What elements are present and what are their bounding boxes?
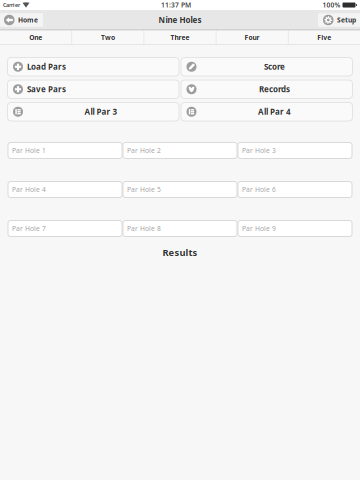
staticText: All Par 3 xyxy=(84,106,117,117)
button[interactable]: All Par 4 xyxy=(181,102,352,121)
staticText: 11:37 PM xyxy=(161,1,191,9)
button[interactable]: Score xyxy=(181,57,352,76)
button[interactable]: Load Pars xyxy=(7,57,179,76)
staticText: Par Hole 9 xyxy=(242,224,276,233)
staticText: Four xyxy=(245,33,260,42)
staticText: Save Pars xyxy=(27,84,66,94)
staticText: Three xyxy=(170,33,189,42)
staticText: Records xyxy=(259,84,290,94)
staticText: Home xyxy=(18,16,38,24)
staticText: Five xyxy=(317,33,331,42)
staticText: Nine Holes xyxy=(158,15,201,25)
button[interactable]: Records xyxy=(181,80,352,98)
staticText: One xyxy=(29,33,42,42)
button[interactable]: Par Hole 6 xyxy=(238,181,352,197)
staticText: Carrier xyxy=(3,1,20,9)
button[interactable]: Par Hole 8 xyxy=(123,220,237,236)
button[interactable]: One xyxy=(0,30,71,45)
staticText: All Par 4 xyxy=(258,106,291,117)
staticText: Score xyxy=(264,61,285,72)
button[interactable]: Par Hole 1 xyxy=(8,142,122,158)
staticText: Load Pars xyxy=(27,61,66,72)
button[interactable]: Par Hole 7 xyxy=(8,220,122,236)
staticText: Par Hole 1 xyxy=(12,146,46,155)
button[interactable]: Save Pars xyxy=(7,80,179,98)
button[interactable]: Setup xyxy=(318,13,360,27)
staticText: Par Hole 8 xyxy=(127,224,161,233)
staticText: Par Hole 6 xyxy=(242,185,276,194)
staticText: Results xyxy=(162,246,197,259)
staticText: Par Hole 3 xyxy=(242,146,276,155)
staticText: Par Hole 4 xyxy=(12,185,46,194)
button[interactable]: Par Hole 9 xyxy=(238,220,352,236)
button[interactable]: Three xyxy=(144,30,216,45)
staticText: 100% xyxy=(322,1,340,9)
staticText: Par Hole 5 xyxy=(127,185,161,194)
staticText: Par Hole 7 xyxy=(12,224,46,233)
button[interactable]: Home xyxy=(0,13,43,27)
button[interactable]: Results xyxy=(0,245,360,259)
button[interactable]: Two xyxy=(72,30,144,45)
button[interactable]: All Par 3 xyxy=(7,102,179,121)
button[interactable]: Five xyxy=(288,30,360,45)
button[interactable]: Four xyxy=(216,30,288,45)
staticText: Two xyxy=(101,33,115,42)
staticText: Setup xyxy=(337,16,356,24)
button[interactable]: Par Hole 5 xyxy=(123,181,237,197)
staticText: Par Hole 2 xyxy=(127,146,161,155)
button[interactable]: Par Hole 4 xyxy=(8,181,122,197)
button[interactable]: Par Hole 2 xyxy=(123,142,237,158)
button[interactable]: Par Hole 3 xyxy=(238,142,352,158)
